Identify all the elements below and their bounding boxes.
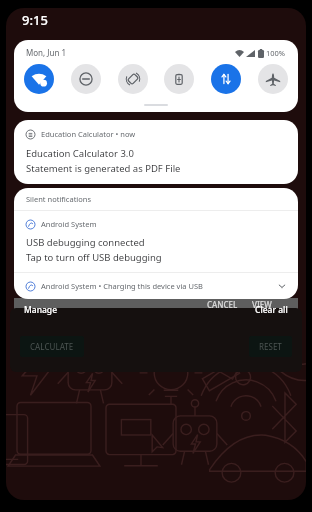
staticText: USB debugging connected <box>26 236 145 249</box>
button[interactable]: Clear all <box>251 301 292 319</box>
staticText: Android System • Charging this device vi… <box>41 281 203 291</box>
button[interactable]: Mobile data <box>211 64 241 94</box>
staticText: Mon, Jun 1 <box>26 47 66 58</box>
staticText: CALCULATE <box>30 341 74 352</box>
button[interactable]: Auto rotate <box>118 64 148 94</box>
button[interactable]: Silent notifications <box>14 188 298 210</box>
staticText: Tap to turn off USB debugging <box>26 251 162 264</box>
staticText: Statement is generated as PDF File <box>26 162 181 175</box>
button[interactable]: CALCULATE <box>20 336 84 357</box>
staticText: 9:15 <box>22 11 48 29</box>
button[interactable]: RESET <box>249 336 292 357</box>
button[interactable]: Battery saver <box>164 64 194 94</box>
staticText: VIEW <box>252 299 272 310</box>
button[interactable]: Do not disturb <box>71 64 101 94</box>
staticText: Education Calculator • now <box>41 129 136 139</box>
staticText: Silent notifications <box>26 194 92 204</box>
button[interactable]: Android System <box>14 211 298 272</box>
staticText: RESET <box>259 341 282 352</box>
button[interactable]: Wi-Fi off <box>24 64 54 94</box>
staticText: Android System <box>41 219 97 229</box>
button[interactable]: Airplane mode <box>258 64 288 94</box>
staticText: CANCEL <box>207 299 238 310</box>
button[interactable]: Manage <box>20 301 62 319</box>
button[interactable]: Education Calculator • now <box>14 120 298 184</box>
button[interactable]: Android System • Charging this device vi… <box>14 273 298 299</box>
staticText: 100% <box>266 48 286 58</box>
staticText: Education Calculator 3.0 <box>26 147 134 160</box>
